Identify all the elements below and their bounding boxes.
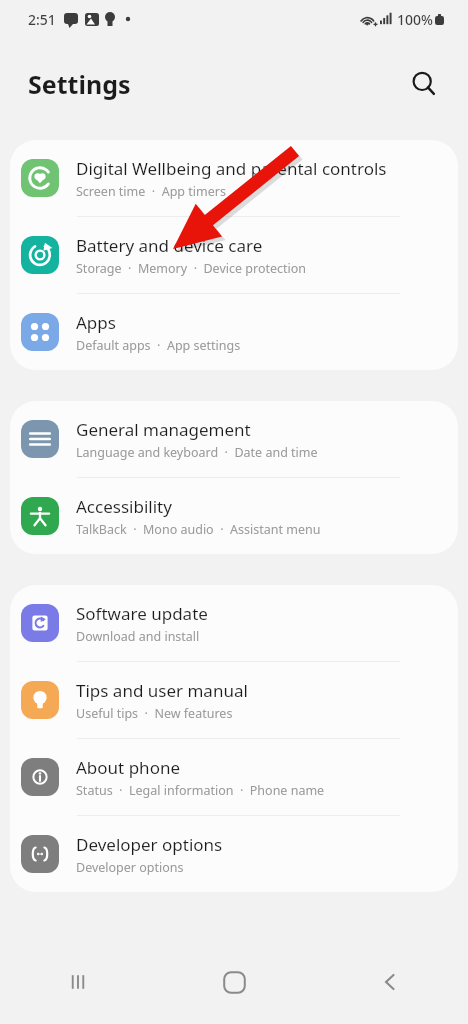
staticText: Useful tips · New features (76, 705, 233, 722)
staticText: Storage · Memory · Device protection (76, 260, 307, 277)
staticText: Battery and device care (76, 234, 263, 257)
staticText: Accessibility (76, 495, 172, 518)
staticText: Apps (76, 311, 116, 334)
staticText: 100% (397, 10, 433, 29)
staticText: 2:51 (28, 10, 56, 29)
staticText: Screen time · App timers (76, 183, 226, 200)
staticText: Developer options (76, 859, 184, 876)
staticText: Language and keyboard · Date and time (76, 444, 318, 461)
staticText: General management (76, 418, 251, 441)
button[interactable]: General management (10, 401, 458, 477)
button[interactable]: Tips and user manual (10, 662, 458, 738)
button[interactable]: About phone (10, 739, 458, 815)
staticText: Developer options (76, 833, 223, 856)
button[interactable]: Home (156, 940, 312, 1024)
button[interactable]: Developer options (10, 816, 458, 892)
button[interactable]: Recent apps (0, 940, 156, 1024)
staticText: About phone (76, 756, 181, 779)
staticText: Status · Legal information · Phone name (76, 782, 325, 799)
staticText: Default apps · App settings (76, 337, 241, 354)
button[interactable]: Accessibility (10, 478, 458, 554)
staticText: Software update (76, 602, 208, 625)
staticText: Digital Wellbeing and parental controls (76, 157, 387, 180)
button[interactable]: Digital Wellbeing and parental controls (10, 140, 458, 216)
staticText: Settings (28, 67, 131, 101)
button[interactable]: Software update (10, 585, 458, 661)
button[interactable]: Battery and device care (10, 217, 458, 293)
staticText: TalkBack · Mono audio · Assistant menu (76, 521, 321, 538)
button[interactable]: Search (400, 60, 448, 108)
button[interactable]: Apps (10, 294, 458, 370)
button[interactable]: Back (312, 940, 468, 1024)
staticText: Tips and user manual (76, 679, 248, 702)
staticText: Download and install (76, 628, 200, 645)
